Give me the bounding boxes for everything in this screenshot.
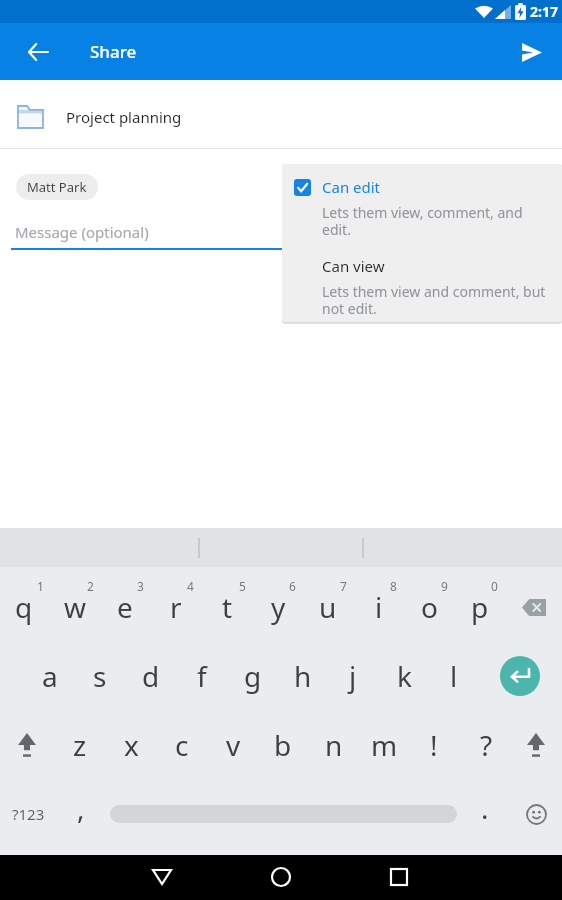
button[interactable]: k (382, 648, 426, 704)
staticText: Can view (322, 256, 385, 276)
staticText: ! (430, 726, 438, 764)
staticText: g (244, 657, 262, 695)
button[interactable]: i (357, 579, 401, 635)
button[interactable]: Message (optional) (11, 222, 551, 250)
staticText: a (42, 657, 58, 695)
button[interactable]: Can view (282, 239, 562, 276)
button[interactable]: ? (464, 717, 508, 773)
button[interactable]: m (362, 717, 406, 773)
button[interactable] (518, 796, 554, 832)
staticText: r (170, 588, 182, 626)
staticText: b (274, 726, 292, 764)
button[interactable]: j (331, 648, 375, 704)
staticText: j (349, 657, 357, 695)
button[interactable]: f (180, 648, 224, 704)
button[interactable]: c (160, 717, 204, 773)
button[interactable]: n (312, 717, 356, 773)
staticText: x (124, 726, 139, 764)
button[interactable]: r (154, 579, 198, 635)
button[interactable]: z (58, 717, 102, 773)
staticText: 6 (289, 578, 296, 594)
button[interactable]: w (53, 579, 97, 635)
button[interactable]: ! (412, 717, 456, 773)
button[interactable]: d (129, 648, 173, 704)
staticText: , (77, 789, 85, 827)
staticText: Project planning (66, 107, 182, 127)
staticText: 2 (87, 578, 94, 594)
button[interactable]: h (281, 648, 325, 704)
staticText: w (64, 588, 87, 626)
button[interactable]: , (59, 780, 103, 836)
staticText: Message (optional) (15, 222, 149, 242)
button[interactable]: Matt Park (16, 174, 98, 200)
staticText: Matt Park (27, 178, 87, 196)
button[interactable]: y (256, 579, 300, 635)
button[interactable]: g (231, 648, 275, 704)
staticText: d (142, 657, 160, 695)
button[interactable]: s (78, 648, 122, 704)
staticText: p (471, 588, 489, 626)
button[interactable] (18, 32, 58, 72)
staticText: 8 (390, 578, 397, 594)
button[interactable]: u (306, 579, 350, 635)
staticText: 5 (239, 578, 246, 594)
button[interactable] (379, 857, 419, 897)
staticText: ?123 (12, 804, 45, 824)
button[interactable]: e (103, 579, 147, 635)
staticText: 4 (187, 578, 194, 594)
staticText: 7 (340, 578, 347, 594)
button[interactable]: a (28, 648, 72, 704)
button[interactable]: Project planning (0, 80, 562, 148)
staticText: i (375, 588, 383, 626)
staticText: 3 (137, 578, 144, 594)
button[interactable] (142, 857, 182, 897)
staticText: o (421, 588, 438, 626)
staticText: 0 (491, 578, 498, 594)
staticText: h (294, 657, 312, 695)
staticText: 9 (441, 578, 448, 594)
staticText: e (117, 588, 133, 626)
staticText: n (325, 726, 343, 764)
staticText: u (319, 588, 337, 626)
staticText: c (175, 726, 189, 764)
staticText: k (397, 657, 412, 695)
staticText: Share (90, 40, 137, 63)
staticText: m (371, 726, 398, 764)
button[interactable] (514, 34, 550, 70)
staticText: Lets them view, comment, and edit. (322, 203, 523, 239)
button[interactable]: t (205, 579, 249, 635)
staticText: 1 (37, 578, 44, 594)
button[interactable]: x (109, 717, 153, 773)
button[interactable] (9, 725, 45, 765)
staticText: z (73, 726, 87, 764)
button[interactable]: . (463, 780, 507, 836)
button[interactable] (518, 725, 554, 765)
button[interactable]: v (211, 717, 255, 773)
button[interactable]: b (261, 717, 305, 773)
button[interactable] (500, 656, 540, 696)
staticText: q (15, 588, 33, 626)
staticText: l (450, 657, 458, 695)
staticText: Can edit (322, 177, 381, 197)
button[interactable]: p (458, 579, 502, 635)
staticText: ? (480, 726, 493, 764)
staticText: s (93, 657, 107, 695)
staticText: f (197, 657, 207, 695)
button[interactable]: Can edit (282, 164, 562, 197)
button[interactable] (516, 588, 552, 626)
staticText: 2:17 (530, 2, 558, 21)
staticText: v (226, 726, 241, 764)
staticText: . (481, 789, 489, 827)
staticText: Lets them view and comment, but not edit… (322, 282, 546, 318)
staticText: y (271, 588, 286, 626)
button[interactable]: o (407, 579, 451, 635)
button[interactable]: q (2, 579, 46, 635)
staticText: t (222, 588, 233, 626)
button[interactable]: l (432, 648, 476, 704)
button[interactable] (261, 857, 301, 897)
